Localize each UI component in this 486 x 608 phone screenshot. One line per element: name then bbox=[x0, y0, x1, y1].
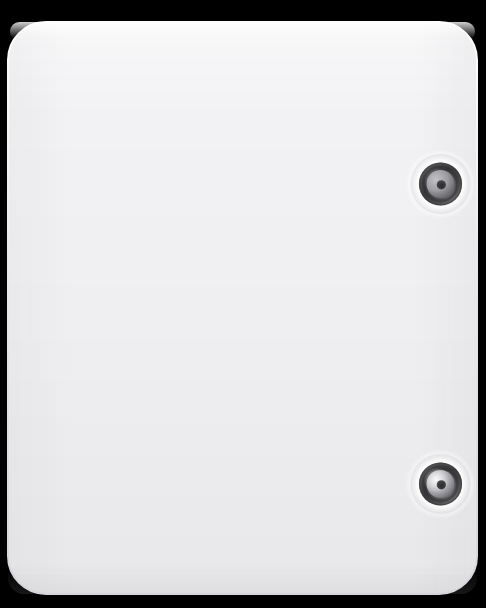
button[interactable]: Bottom side button bbox=[414, 457, 467, 510]
button[interactable]: Top side button bbox=[414, 157, 467, 210]
